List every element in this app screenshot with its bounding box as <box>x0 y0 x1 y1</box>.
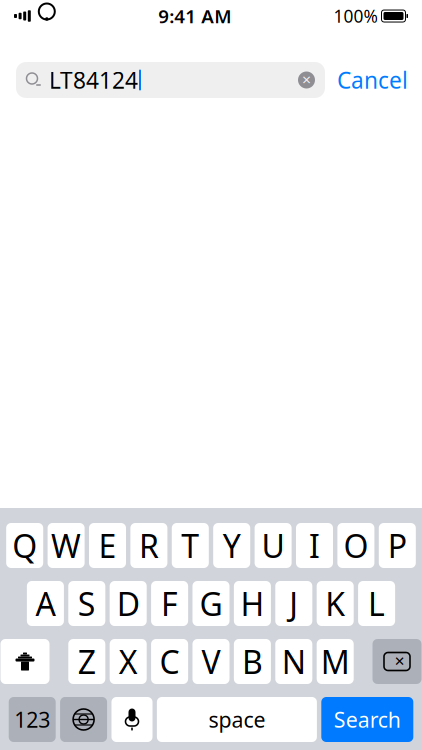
staticText: E <box>98 524 116 567</box>
button[interactable]: G <box>192 581 229 626</box>
button[interactable]: A <box>27 581 64 626</box>
staticText: B <box>242 640 263 683</box>
staticText: M <box>321 640 350 683</box>
staticText: U <box>262 524 285 567</box>
button[interactable]: R <box>130 523 167 568</box>
staticText: LT84124 <box>49 65 138 95</box>
button[interactable]: P <box>379 523 416 568</box>
staticText: 9:41 AM <box>158 4 231 28</box>
staticText: P <box>388 524 407 567</box>
staticText: O <box>343 524 368 567</box>
staticText: V <box>201 640 220 683</box>
button[interactable]: I <box>296 523 333 568</box>
button[interactable]: space <box>157 697 317 742</box>
staticText: W <box>51 524 81 567</box>
button[interactable]: X <box>110 639 147 684</box>
button[interactable]: Search <box>321 697 413 742</box>
button[interactable]: Z <box>68 639 105 684</box>
button[interactable]: T <box>172 523 209 568</box>
staticText: S <box>78 582 96 625</box>
button[interactable]: C <box>151 639 188 684</box>
staticText: D <box>117 582 140 625</box>
button[interactable]: Next keyboard <box>60 697 107 742</box>
button[interactable]: S <box>68 581 105 626</box>
button[interactable]: Dictation <box>111 697 152 742</box>
staticText: I <box>309 524 320 567</box>
button[interactable]: B <box>234 639 271 684</box>
staticText: T <box>181 524 199 567</box>
staticText: Y <box>223 524 241 567</box>
staticText: L <box>368 582 385 625</box>
button[interactable]: LT84124 <box>16 62 325 98</box>
staticText: Cancel <box>337 65 408 95</box>
staticText: H <box>240 582 264 625</box>
button[interactable]: D <box>110 581 147 626</box>
staticText: A <box>35 582 55 625</box>
button[interactable]: O <box>337 523 374 568</box>
button[interactable]: V <box>192 639 229 684</box>
button[interactable]: K <box>317 581 354 626</box>
button[interactable]: J <box>275 581 312 626</box>
button[interactable]: N <box>275 639 312 684</box>
staticText: K <box>325 582 345 625</box>
staticText: G <box>199 582 222 625</box>
button[interactable]: W <box>48 523 85 568</box>
button[interactable]: L <box>358 581 395 626</box>
button[interactable]: Delete <box>372 639 421 684</box>
staticText: F <box>161 582 178 625</box>
staticText: ✕ <box>301 73 311 87</box>
staticText: J <box>289 582 298 625</box>
staticText: C <box>160 640 180 683</box>
staticText: space <box>208 705 265 734</box>
button[interactable]: Cancel <box>325 62 422 98</box>
staticText: ✕ <box>394 654 405 669</box>
button[interactable]: U <box>255 523 292 568</box>
staticText: N <box>282 640 306 683</box>
button[interactable]: Shift <box>0 639 49 684</box>
staticText: Z <box>78 640 96 683</box>
staticText: Search <box>334 705 401 734</box>
button[interactable]: M <box>317 639 354 684</box>
button[interactable]: E <box>89 523 126 568</box>
button[interactable]: Y <box>213 523 250 568</box>
button[interactable]: F <box>151 581 188 626</box>
staticText: 100% <box>333 4 377 27</box>
staticText: 123 <box>14 705 50 734</box>
button[interactable]: Numbers <box>9 697 56 742</box>
button[interactable]: H <box>234 581 271 626</box>
button[interactable]: Q <box>6 523 43 568</box>
staticText: X <box>119 640 138 683</box>
staticText: Q <box>12 524 37 567</box>
staticText: R <box>139 524 159 567</box>
